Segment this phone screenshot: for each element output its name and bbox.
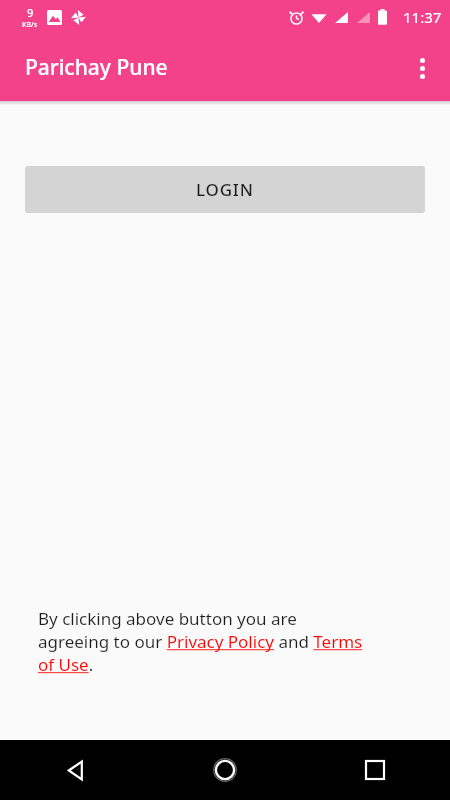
button[interactable]: Back: [0, 740, 150, 800]
staticText: LOGIN: [196, 178, 254, 201]
button[interactable]: By clicking above button you are agreein…: [38, 607, 372, 676]
staticText: KB/s: [22, 20, 38, 30]
staticText: 9: [27, 5, 34, 20]
button[interactable]: LOGIN: [25, 166, 425, 213]
button[interactable]: More options: [400, 46, 444, 90]
button[interactable]: Home: [150, 740, 300, 800]
staticText: 11:37: [403, 7, 442, 27]
staticText: Parichay Pune: [25, 53, 168, 82]
button[interactable]: Recent apps: [300, 740, 450, 800]
